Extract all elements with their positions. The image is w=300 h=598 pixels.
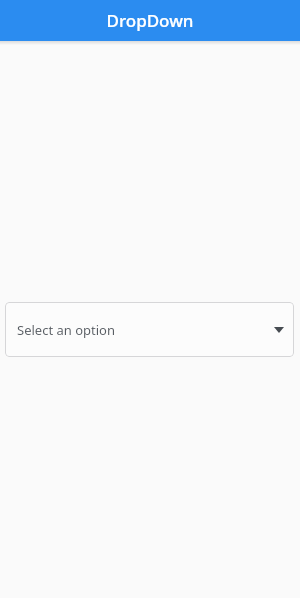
staticText: Select an option [17, 321, 115, 339]
button[interactable]: Select an option dropdown [5, 302, 294, 357]
staticText: DropDown [106, 9, 194, 32]
